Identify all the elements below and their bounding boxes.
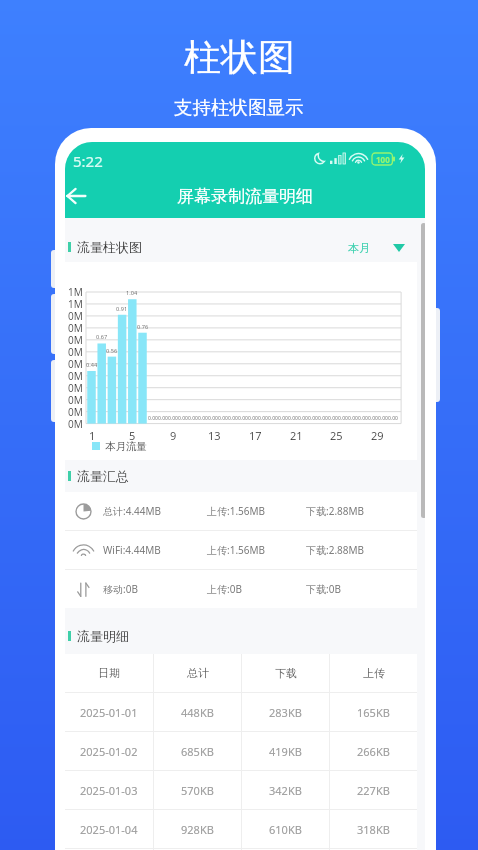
- staticText: 支持柱状图显示: [174, 96, 304, 119]
- staticText: 0.00: [168, 415, 178, 422]
- staticText: 318KB: [357, 822, 390, 837]
- staticText: 上传:0B: [207, 582, 306, 596]
- staticText: WiFi:4.44MB: [103, 543, 207, 557]
- button[interactable]: 本月: [345, 238, 405, 257]
- staticText: 日期: [98, 666, 120, 680]
- staticText: 0.00: [238, 415, 248, 422]
- staticText: 5: [129, 428, 136, 441]
- staticText: 1: [89, 428, 96, 441]
- staticText: 柱状图: [184, 34, 295, 81]
- staticText: 283KB: [269, 705, 302, 720]
- staticText: 0.00: [328, 415, 338, 422]
- staticText: 上传:1.56MB: [207, 543, 306, 557]
- staticText: 610KB: [269, 822, 302, 837]
- staticText: 流量汇总: [77, 468, 129, 484]
- staticText: 0.00: [268, 415, 278, 422]
- staticText: 0M: [68, 369, 83, 383]
- staticText: 0.00: [188, 415, 198, 422]
- staticText: 342KB: [269, 783, 302, 798]
- staticText: 0.00: [248, 415, 258, 422]
- staticText: 0.00: [278, 415, 288, 422]
- staticText: 21: [290, 428, 303, 441]
- staticText: 2025-01-01: [80, 705, 138, 720]
- staticText: 29: [371, 428, 384, 441]
- staticText: 570KB: [181, 783, 214, 798]
- staticText: 0.00: [378, 415, 388, 422]
- staticText: 2025-01-04: [80, 822, 138, 837]
- staticText: 0M: [68, 405, 83, 419]
- staticText: 上传: [363, 666, 385, 680]
- staticText: 685KB: [181, 744, 214, 759]
- staticText: 0.00: [368, 415, 378, 422]
- staticText: 本月: [348, 241, 370, 255]
- staticText: 100: [376, 154, 390, 165]
- staticText: 流量柱状图: [77, 239, 142, 255]
- staticText: 1M: [68, 285, 83, 299]
- staticText: 0.00: [158, 415, 168, 422]
- staticText: 移动:0B: [103, 582, 207, 596]
- staticText: 0.56: [106, 347, 118, 355]
- staticText: 下载: [275, 666, 297, 680]
- staticText: 0M: [68, 417, 83, 431]
- staticText: 下载:2.88MB: [306, 543, 365, 557]
- staticText: 2025-01-02: [80, 744, 138, 759]
- staticText: 0.00: [358, 415, 368, 422]
- staticText: 0.00: [198, 415, 208, 422]
- staticText: 0M: [68, 321, 83, 335]
- staticText: 下载:2.88MB: [306, 504, 365, 518]
- staticText: 25: [330, 428, 343, 441]
- button[interactable]: WiFi:4.44MB: [65, 531, 417, 569]
- staticText: 本月流量: [105, 440, 147, 452]
- staticText: 0.00: [218, 415, 228, 422]
- button[interactable]: 移动:0B: [65, 570, 417, 608]
- staticText: 屏幕录制流量明细: [177, 186, 313, 207]
- staticText: 0M: [68, 357, 83, 371]
- staticText: 0.00: [258, 415, 268, 422]
- staticText: 0M: [68, 345, 83, 359]
- button[interactable]: Back: [65, 174, 94, 218]
- staticText: 0.91: [116, 305, 128, 313]
- staticText: 0.00: [288, 415, 298, 422]
- staticText: 928KB: [181, 822, 214, 837]
- staticText: 0.00: [388, 415, 398, 422]
- staticText: 0.00: [308, 415, 318, 422]
- staticText: 448KB: [181, 705, 214, 720]
- staticText: 0.00: [148, 415, 158, 422]
- staticText: 总计: [187, 666, 209, 680]
- staticText: 1M: [68, 297, 83, 311]
- staticText: 419KB: [269, 744, 302, 759]
- staticText: 0.67: [96, 333, 108, 341]
- staticText: 0.00: [318, 415, 328, 422]
- staticText: 165KB: [357, 705, 390, 720]
- staticText: 13: [208, 428, 221, 441]
- staticText: 0.00: [298, 415, 308, 422]
- staticText: 下载:0B: [306, 582, 341, 596]
- staticText: 227KB: [357, 783, 390, 798]
- staticText: 0.44: [86, 361, 98, 369]
- staticText: 流量明细: [77, 628, 129, 644]
- staticText: 266KB: [357, 744, 390, 759]
- staticText: 1.04: [126, 289, 138, 297]
- staticText: 上传:1.56MB: [207, 504, 306, 518]
- staticText: 0.00: [348, 415, 358, 422]
- staticText: 0M: [68, 309, 83, 323]
- staticText: 0.00: [338, 415, 348, 422]
- staticText: 0M: [68, 393, 83, 407]
- staticText: 0.00: [208, 415, 218, 422]
- button[interactable]: 总计:4.44MB: [65, 492, 417, 530]
- staticText: 0M: [68, 381, 83, 395]
- staticText: 总计:4.44MB: [103, 504, 207, 518]
- staticText: 17: [249, 428, 262, 441]
- staticText: 2025-01-03: [80, 783, 138, 798]
- staticText: 0.00: [228, 415, 238, 422]
- staticText: 9: [170, 428, 177, 441]
- staticText: 5:22: [73, 151, 103, 171]
- staticText: 0M: [68, 333, 83, 347]
- staticText: 0.00: [178, 415, 188, 422]
- staticText: 0.76: [137, 323, 149, 331]
